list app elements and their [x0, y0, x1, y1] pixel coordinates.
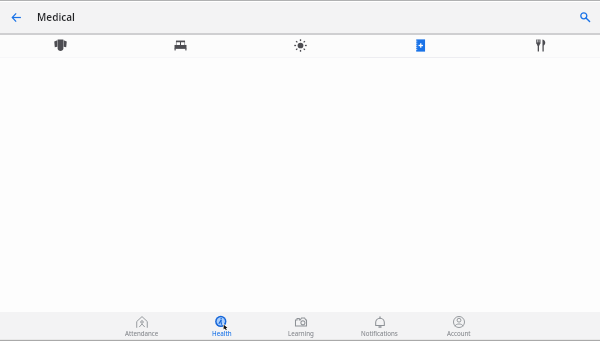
button[interactable]: Brightness	[240, 35, 360, 55]
button[interactable]: Medical records	[360, 35, 480, 55]
staticText: Attendance	[125, 329, 159, 337]
button[interactable]: Learning	[261, 313, 340, 339]
button[interactable]: Safety	[0, 35, 120, 55]
staticText: Health	[212, 329, 232, 337]
button[interactable]: Notifications	[340, 313, 419, 339]
staticText: Notifications	[361, 329, 398, 337]
button[interactable]: Nutrition	[480, 35, 600, 55]
staticText: Learning	[288, 329, 314, 337]
button[interactable]: Search	[572, 4, 598, 30]
button[interactable]: Sleep	[120, 35, 240, 55]
staticText: Medical	[37, 10, 75, 24]
button[interactable]: Attendance	[102, 313, 182, 339]
button[interactable]: Health	[182, 313, 261, 339]
button[interactable]: Back	[5, 6, 27, 28]
button[interactable]: Account	[419, 313, 498, 339]
staticText: Account	[447, 329, 471, 337]
